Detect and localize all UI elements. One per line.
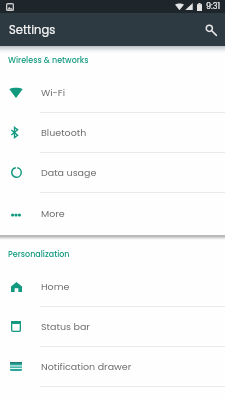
button[interactable]: Notification drawer [0,347,225,387]
staticText: Wireless & networks [8,55,89,66]
button[interactable]: Wi-Fi [0,73,225,113]
staticText: 9:31 [206,1,221,12]
button[interactable]: Search [199,18,223,42]
button[interactable]: Status bar [0,307,225,347]
button[interactable]: More [0,193,225,233]
staticText: More [41,207,65,220]
staticText: Notification drawer [41,360,132,373]
staticText: Home [41,280,70,293]
button[interactable]: Data usage [0,153,225,193]
staticText: Bluetooth [41,126,87,139]
staticText: Data usage [41,166,97,179]
staticText: Settings [9,22,56,38]
button[interactable]: Bluetooth [0,113,225,153]
staticText: Status bar [41,320,90,333]
staticText: Personalization [8,249,70,260]
staticText: Wi-Fi [41,86,65,99]
button[interactable]: Home [0,267,225,307]
